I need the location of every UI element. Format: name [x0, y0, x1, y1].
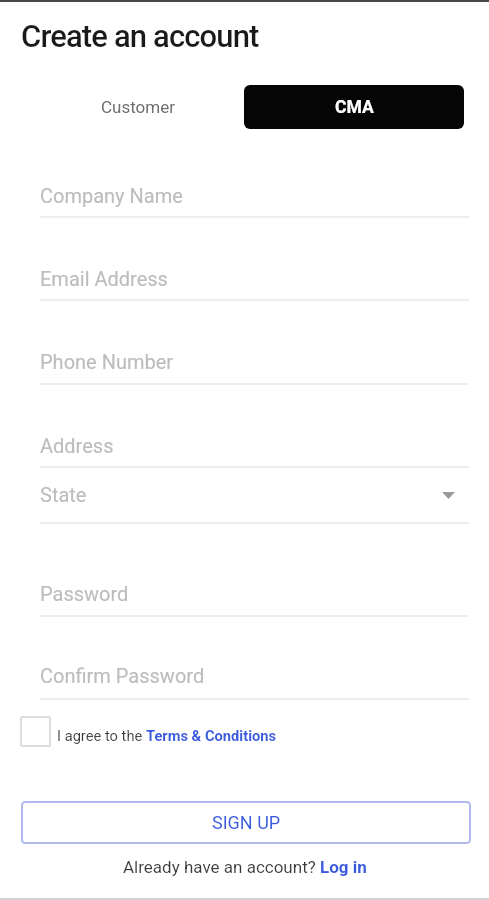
staticText: Customer [101, 97, 175, 117]
staticText: Already have an account? Log in [123, 857, 367, 877]
button[interactable]: State [40, 475, 469, 526]
button[interactable]: Already have an account? Log in [0, 854, 489, 880]
staticText: SIGN UP [212, 812, 281, 833]
button[interactable]: CMA [244, 85, 464, 129]
button[interactable]: Customer [28, 85, 248, 129]
staticText: Phone Number [40, 350, 174, 373]
button[interactable]: Accept terms checkbox [20, 716, 277, 747]
button[interactable]: Address [40, 426, 469, 470]
staticText: CMA [335, 97, 374, 118]
staticText: Password [40, 582, 129, 605]
button[interactable]: Company Name [40, 176, 469, 220]
button[interactable]: SIGN UP [21, 801, 471, 844]
other: Open state picker [442, 492, 455, 499]
button[interactable]: Confirm Password [40, 656, 469, 702]
staticText: Company Name [40, 184, 183, 207]
staticText: Confirm Password [40, 664, 205, 687]
other: Accept terms checkbox [20, 716, 51, 747]
button[interactable]: Phone Number [40, 342, 469, 387]
staticText: Address [40, 434, 114, 457]
staticText: Email Address [40, 267, 168, 290]
button[interactable]: Email Address [40, 259, 469, 303]
staticText: I agree to the Terms & Conditions [57, 727, 277, 744]
button[interactable]: Password [40, 574, 469, 619]
staticText: Create an account [21, 18, 259, 54]
staticText: State [40, 483, 87, 506]
